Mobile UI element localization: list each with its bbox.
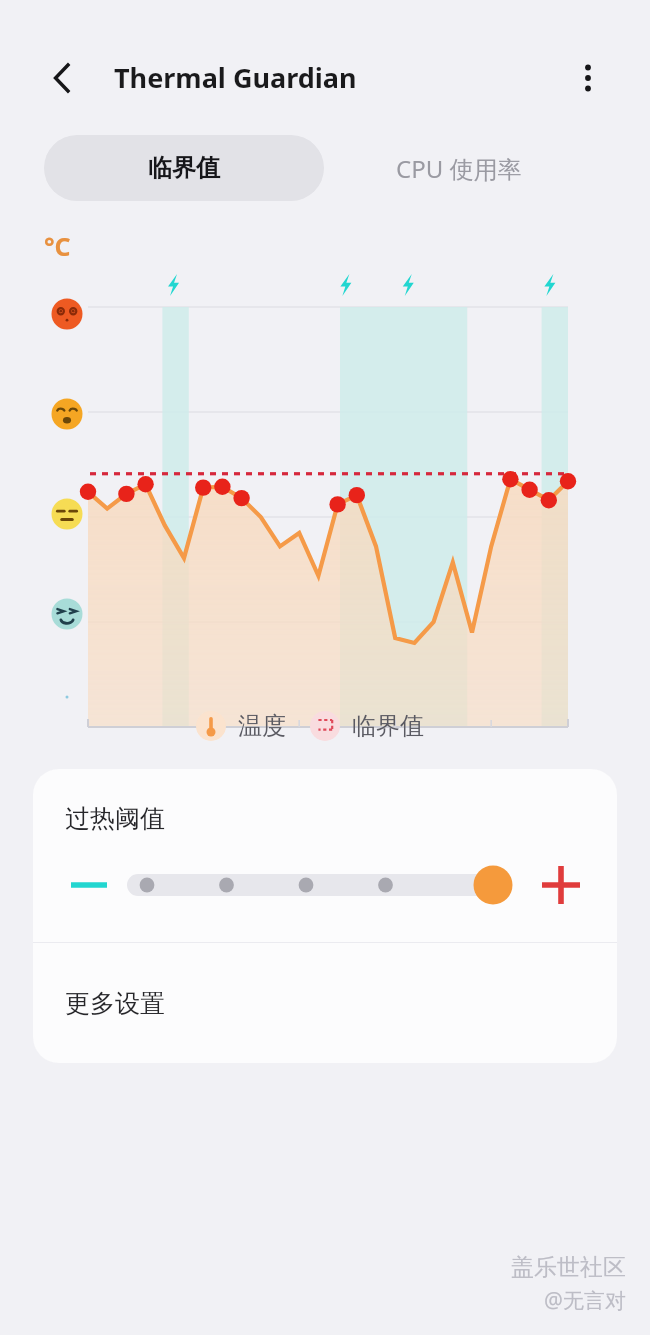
button[interactable]: Threshold level [123, 858, 519, 912]
staticText: 盖乐世社区 [511, 1253, 626, 1282]
staticText: @无言对 [544, 1286, 626, 1315]
button[interactable]: 临界值 [44, 135, 324, 201]
button[interactable]: 更多设置 [33, 943, 617, 1063]
staticText: CPU 使用率 [396, 152, 522, 185]
staticText: 过热阈值 [65, 803, 165, 834]
button[interactable]: Back [40, 56, 84, 100]
staticText: 温度 [238, 711, 286, 741]
staticText: 临界值 [148, 153, 220, 183]
staticText: Thermal Guardian [114, 59, 357, 96]
button[interactable]: Increase threshold [533, 858, 589, 912]
staticText: 临界值 [352, 711, 424, 741]
button[interactable]: CPU 使用率 [324, 135, 594, 201]
staticText: 更多设置 [65, 988, 165, 1019]
button[interactable]: Decrease threshold [61, 858, 117, 912]
staticText: °C [44, 229, 71, 263]
button[interactable]: More options [566, 56, 610, 100]
button[interactable]: 过热阈值 [33, 769, 617, 942]
